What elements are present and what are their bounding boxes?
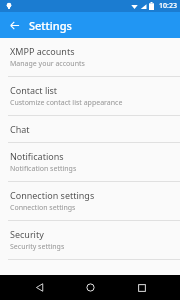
staticText: Notification settings bbox=[10, 164, 77, 174]
button[interactable]: Notifications bbox=[0, 143, 180, 181]
staticText: Security bbox=[10, 228, 44, 240]
button[interactable]: Home bbox=[77, 275, 103, 300]
button[interactable]: Recent apps bbox=[129, 275, 155, 300]
staticText: Notifications bbox=[10, 150, 64, 162]
button[interactable]: XMPP accounts bbox=[0, 38, 180, 76]
staticText: Contact list bbox=[10, 84, 58, 96]
staticText: Chat bbox=[10, 123, 30, 135]
button[interactable]: Back bbox=[26, 275, 52, 300]
button[interactable]: Contact list bbox=[0, 77, 180, 115]
staticText: Customize contact list appearance bbox=[10, 98, 123, 108]
button[interactable]: Back bbox=[4, 15, 24, 35]
staticText: 10:23 bbox=[159, 1, 177, 11]
staticText: Connection settings bbox=[10, 203, 76, 213]
button[interactable]: Chat bbox=[0, 116, 180, 142]
button[interactable]: Security bbox=[0, 221, 180, 259]
staticText: Settings bbox=[29, 18, 72, 33]
staticText: Connection settings bbox=[10, 189, 95, 201]
staticText: XMPP accounts bbox=[10, 45, 75, 57]
button[interactable]: Connection settings bbox=[0, 182, 180, 220]
staticText: Manage your accounts bbox=[10, 59, 85, 69]
staticText: Security settings bbox=[10, 242, 65, 252]
